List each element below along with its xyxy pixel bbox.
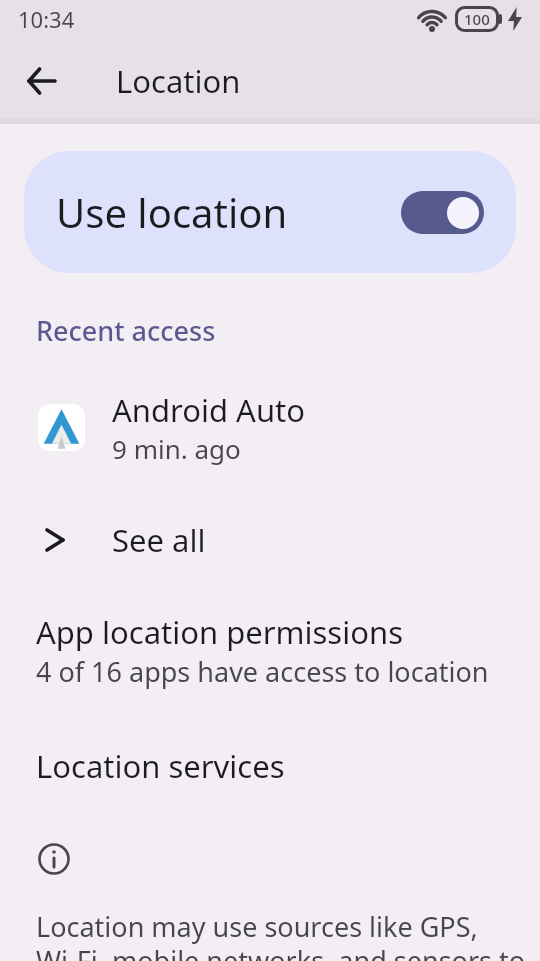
button[interactable]: Android Auto [0,389,540,466]
staticText: Recent access [36,312,216,349]
staticText: 9 min. ago [112,431,241,466]
button[interactable]: See all [0,519,540,561]
button[interactable] [14,53,70,109]
staticText: Location may use sources like GPS, Wi-Fi… [36,908,526,961]
staticText: Location [116,60,241,102]
button[interactable]: App location permissions [0,611,540,690]
staticText: Location services [36,745,285,787]
staticText: 100 [464,9,490,29]
staticText: See all [112,519,206,561]
staticText: Use location [56,185,288,239]
button[interactable] [401,191,484,234]
button[interactable]: Location services [0,745,540,787]
staticText: 10:34 [18,4,75,34]
staticText: App location permissions [36,611,403,653]
staticText: Android Auto [112,389,306,431]
staticText: 4 of 16 apps have access to location [36,653,489,690]
button[interactable]: Use location [24,151,516,273]
